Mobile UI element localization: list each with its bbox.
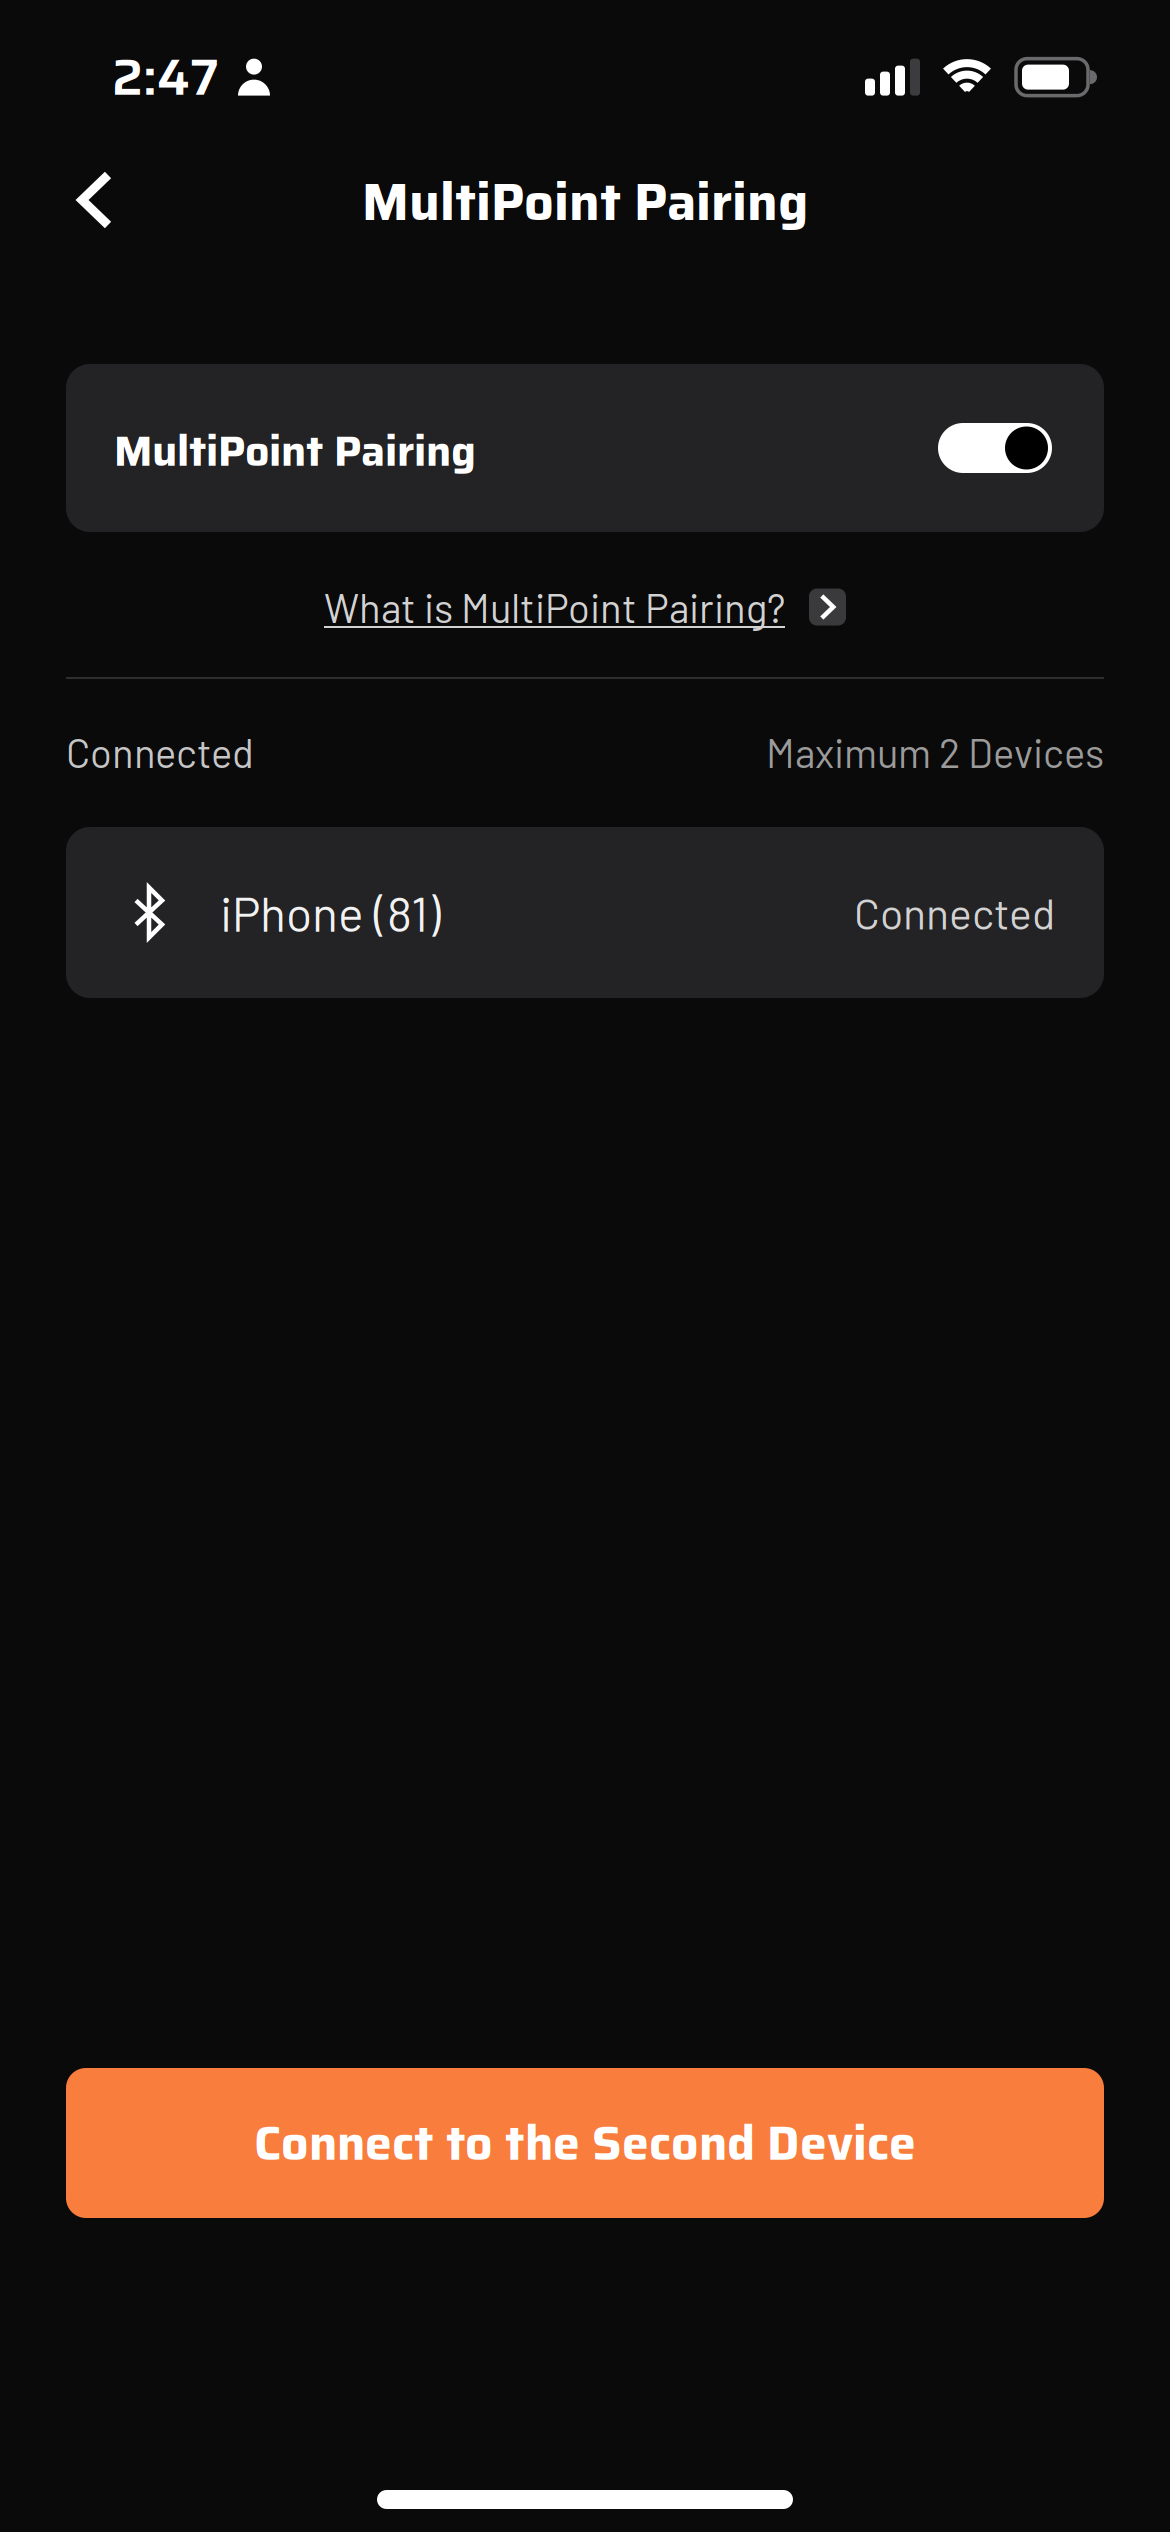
button[interactable]: iPhone (81), Connected [0,827,1170,998]
button[interactable]: Connect to the Second Device [0,2068,1170,2218]
button[interactable]: MultiPoint Pairing On [938,423,1052,473]
staticText: Connected [66,728,254,776]
staticText: MultiPoint Pairing [362,161,808,243]
staticText: Connect to the Second Device [254,2105,916,2181]
staticText: Connected [854,887,1055,938]
staticText: What is MultiPoint Pairing? [324,583,785,631]
staticText: Maximum 2 Devices [766,728,1104,776]
staticText: 2:47 [112,37,219,117]
staticText: iPhone (81) [220,884,441,941]
staticText: MultiPoint Pairing [114,417,476,485]
button[interactable]: What is MultiPoint Pairing? [324,583,846,631]
button[interactable]: Back [0,157,148,207]
